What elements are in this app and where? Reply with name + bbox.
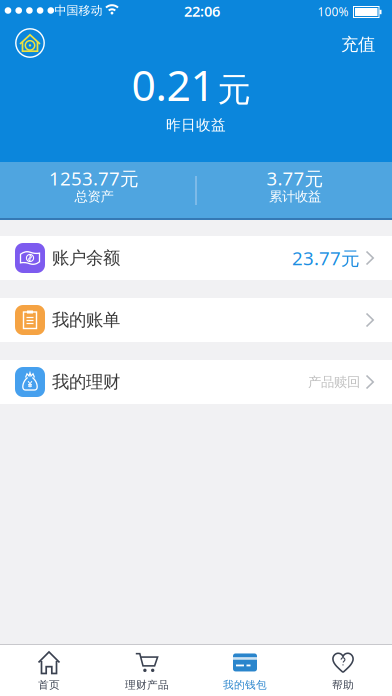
- button[interactable]: 首页: [0, 645, 98, 695]
- staticText: 我的账单: [52, 309, 120, 331]
- staticText: 22:06: [184, 1, 220, 21]
- button[interactable]: 充值: [341, 34, 375, 55]
- staticText: 3.77元: [266, 166, 323, 191]
- button[interactable]: 我的钱包: [196, 645, 294, 695]
- staticText: 总资产: [74, 188, 113, 205]
- button[interactable]: 帮助: [294, 645, 392, 695]
- staticText: 昨日收益: [166, 116, 226, 134]
- staticText: 账户余额: [52, 247, 120, 269]
- staticText: 元: [217, 69, 250, 110]
- button[interactable]: 我的理财: [0, 360, 392, 404]
- button[interactable]: 理财产品: [98, 645, 196, 695]
- button[interactable]: 首页: [15, 28, 45, 58]
- button[interactable]: 账户余额: [0, 236, 392, 280]
- staticText: 中国移动: [54, 3, 102, 18]
- staticText: 首页: [38, 678, 60, 691]
- staticText: 我的理财: [52, 371, 120, 393]
- button[interactable]: 我的账单: [0, 298, 392, 342]
- staticText: 产品赎回: [308, 374, 360, 390]
- staticText: 累计收益: [269, 188, 321, 205]
- staticText: 100%: [317, 3, 348, 19]
- staticText: 0.21: [131, 56, 214, 113]
- staticText: 23.77元: [292, 246, 360, 270]
- staticText: 充值: [341, 34, 375, 55]
- staticText: 帮助: [332, 678, 354, 691]
- staticText: 理财产品: [125, 678, 169, 691]
- staticText: 1253.77元: [49, 166, 139, 191]
- staticText: 我的钱包: [223, 678, 267, 691]
